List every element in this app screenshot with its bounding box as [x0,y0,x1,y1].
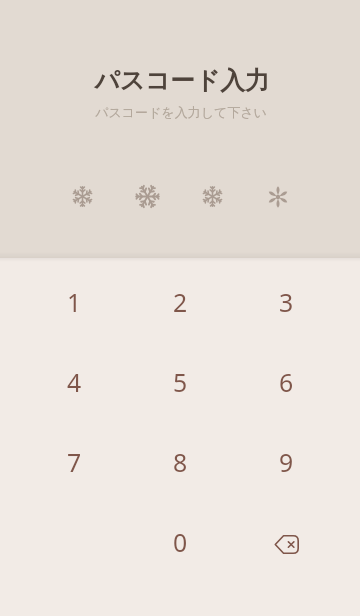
button[interactable]: 6 [233,342,339,422]
button[interactable]: 0 [127,502,233,582]
button[interactable]: 5 [127,342,233,422]
staticText: 2 [173,285,188,319]
staticText: パスコード入力 [94,65,270,96]
button[interactable]: 9 [233,422,339,502]
staticText: 5 [173,365,188,399]
staticText: 1 [67,285,82,319]
button[interactable]: 8 [127,422,233,502]
staticText: 0 [173,525,188,559]
staticText: 7 [67,445,82,479]
staticText: 9 [279,445,294,479]
button[interactable]: 1 [21,262,127,342]
button[interactable]: 4 [21,342,127,422]
button[interactable]: Delete [233,502,339,582]
staticText: 8 [173,445,188,479]
staticText: パスコードを入力して下さい [95,104,267,120]
button[interactable]: 3 [233,262,339,342]
button[interactable]: 7 [21,422,127,502]
staticText: 4 [67,365,82,399]
staticText: 3 [279,285,294,319]
button[interactable]: 2 [127,262,233,342]
staticText: 6 [279,365,294,399]
